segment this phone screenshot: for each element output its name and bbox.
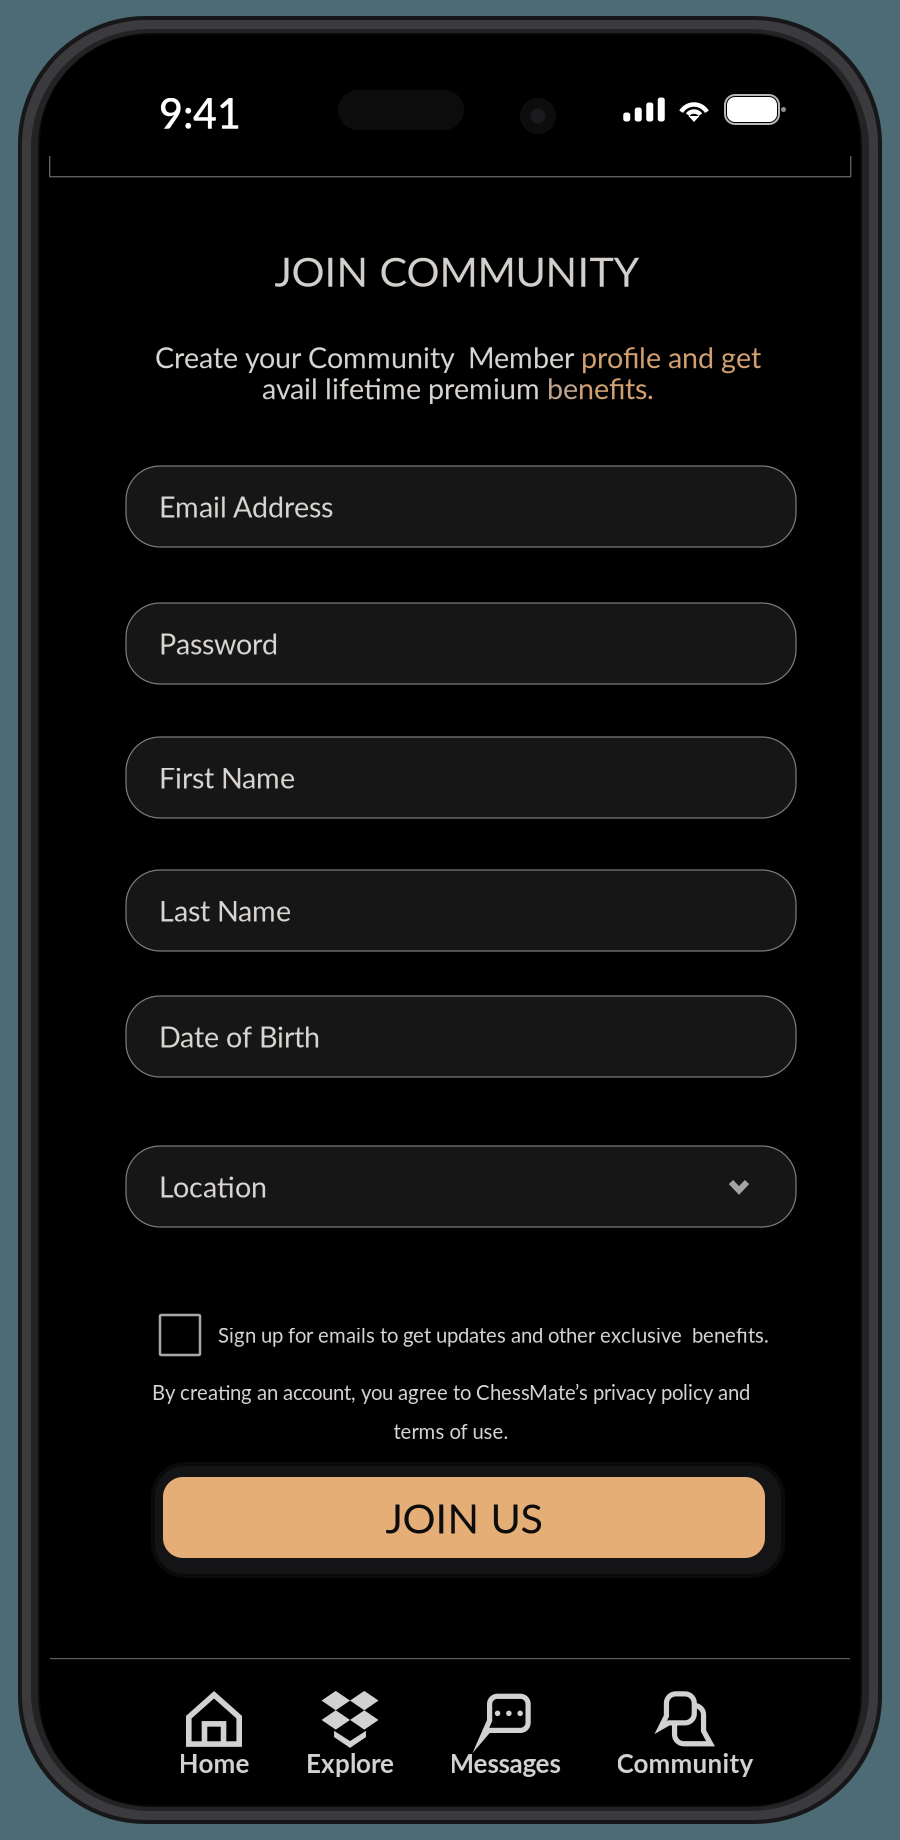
staticText: Sign up for emails to get updates and ot…: [218, 1323, 769, 1347]
button[interactable]: Explore: [260, 1686, 440, 1784]
button[interactable]: Password: [126, 603, 796, 684]
staticText: profile and get: [581, 340, 761, 374]
button[interactable]: Sign up for emails to get updates and ot…: [160, 1315, 769, 1355]
button[interactable]: Last Name: [126, 870, 796, 951]
staticText: terms of use.: [393, 1419, 508, 1443]
staticText: JOIN COMMUNITY: [274, 246, 639, 296]
staticText: Date of Birth: [159, 1019, 320, 1054]
staticText: By creating an account, you agree to Che…: [152, 1380, 750, 1404]
button[interactable]: Community: [595, 1686, 775, 1784]
button[interactable]: Date of Birth: [126, 996, 796, 1077]
staticText: be: [547, 371, 578, 405]
staticText: Explore: [306, 1747, 394, 1779]
staticText: avail lifetime premium: [262, 371, 547, 405]
staticText: Location: [159, 1169, 267, 1204]
staticText: 9:41: [159, 88, 241, 138]
button[interactable]: JOIN US: [151, 1462, 785, 1578]
staticText: Home: [178, 1747, 249, 1779]
staticText: Community: [616, 1747, 753, 1779]
staticText: Password: [159, 626, 278, 661]
staticText: Create your Community Member: [155, 340, 581, 374]
button[interactable]: Messages: [415, 1686, 595, 1784]
staticText: JOIN US: [385, 1493, 542, 1542]
button[interactable]: Home: [124, 1686, 304, 1784]
button[interactable]: First Name: [126, 737, 796, 818]
staticText: Messages: [449, 1747, 560, 1779]
staticText: Last Name: [159, 893, 291, 928]
staticText: nefits.: [578, 371, 654, 405]
button[interactable]: Location: [126, 1146, 796, 1227]
staticText: Email Address: [159, 489, 333, 524]
staticText: First Name: [159, 760, 295, 795]
button[interactable]: Email Address: [126, 466, 796, 547]
